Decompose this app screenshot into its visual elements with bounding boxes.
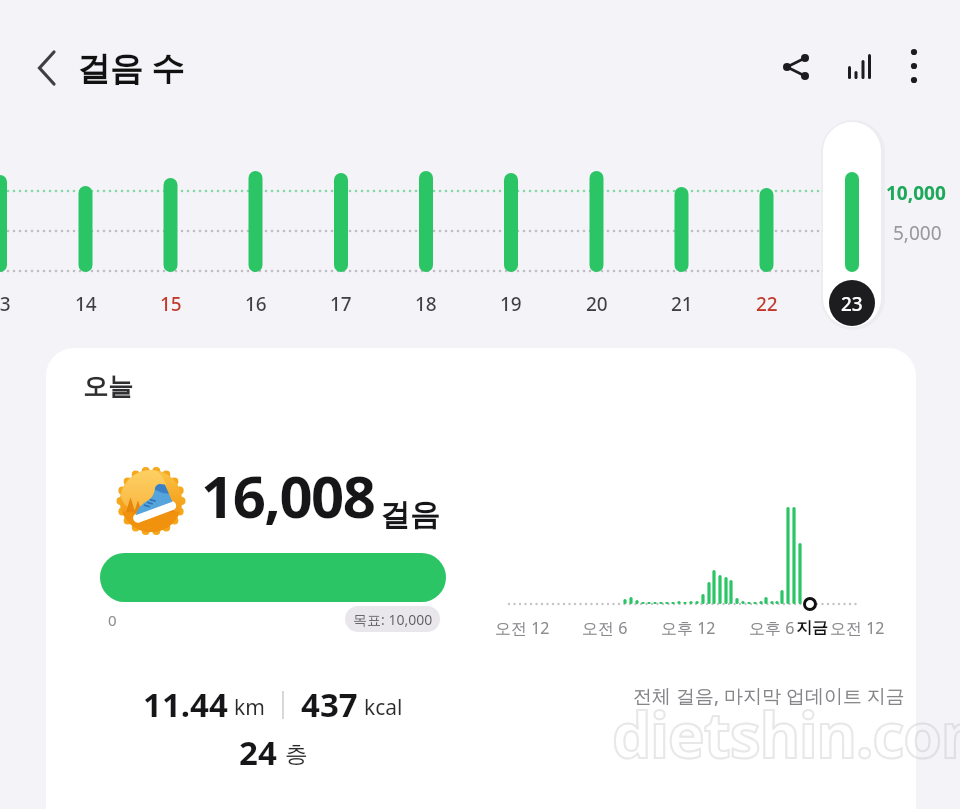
staticText: 걸음 xyxy=(380,496,440,534)
staticText: 오전 12 xyxy=(495,617,550,639)
staticText: 오후 12 xyxy=(661,617,716,639)
button[interactable] xyxy=(775,46,817,88)
staticText: dietshin.com xyxy=(612,692,960,776)
staticText: 오전 6 xyxy=(582,617,628,639)
staticText: 437 xyxy=(301,682,358,727)
staticText: 17 xyxy=(330,291,352,315)
staticText: 오전 12 xyxy=(830,617,885,639)
staticText: 16 xyxy=(245,291,267,315)
staticText: 23 xyxy=(841,291,863,315)
staticText: 오늘 xyxy=(83,371,133,402)
staticText: 오후 6 xyxy=(749,617,795,639)
button[interactable]: 23 xyxy=(822,291,882,315)
staticText: 10,000 xyxy=(886,180,946,206)
button[interactable] xyxy=(28,44,64,92)
button[interactable] xyxy=(838,46,880,88)
staticText: 19 xyxy=(500,291,522,315)
staticText: 걸음 수 xyxy=(77,45,185,90)
staticText: 11.44 xyxy=(143,682,228,727)
staticText: km xyxy=(234,693,265,722)
staticText: 24 xyxy=(239,730,277,775)
staticText: 14 xyxy=(75,291,97,315)
staticText: 15 xyxy=(160,291,182,315)
staticText: 전체 걸음, 마지막 업데이트 지금 xyxy=(633,683,905,709)
button[interactable] xyxy=(894,46,934,86)
staticText: 13 xyxy=(0,291,11,315)
staticText: 5,000 xyxy=(893,220,942,246)
staticText: 16,008 xyxy=(201,456,375,535)
staticText: kcal xyxy=(364,693,403,722)
staticText: 20 xyxy=(586,291,608,315)
staticText: 0 xyxy=(108,610,117,630)
staticText: 목표: 10,000 xyxy=(353,610,433,629)
staticText: 지금 xyxy=(796,618,828,638)
staticText: 22 xyxy=(756,291,778,315)
staticText: 18 xyxy=(415,291,437,315)
staticText: 21 xyxy=(671,291,693,315)
staticText: 층 xyxy=(285,740,308,769)
